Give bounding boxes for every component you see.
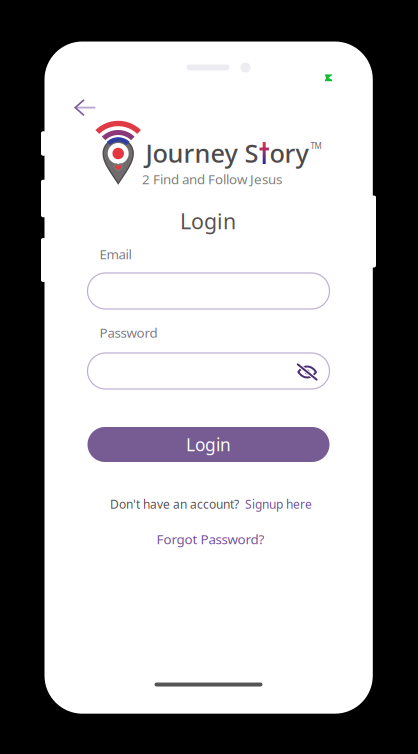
button[interactable]: Show password (296, 363, 318, 381)
staticText: Don't have an account? (110, 496, 239, 512)
staticText: Forgot Password? (156, 530, 264, 548)
staticText: Password (99, 324, 157, 341)
button[interactable]: Signup here (245, 496, 312, 512)
staticText: Login (186, 433, 231, 456)
button[interactable]: Back (72, 97, 98, 119)
staticText: ory (269, 136, 308, 170)
staticText: Journey S (145, 136, 258, 170)
staticText: Email (99, 245, 131, 263)
staticText: Login (180, 207, 236, 235)
button[interactable]: Login (87, 427, 329, 462)
staticText: 2 Find and Follow Jesus (142, 170, 282, 188)
staticText: Signup here (245, 496, 312, 512)
staticText: TM (310, 141, 321, 151)
button[interactable]: Forgot Password? (156, 530, 264, 548)
